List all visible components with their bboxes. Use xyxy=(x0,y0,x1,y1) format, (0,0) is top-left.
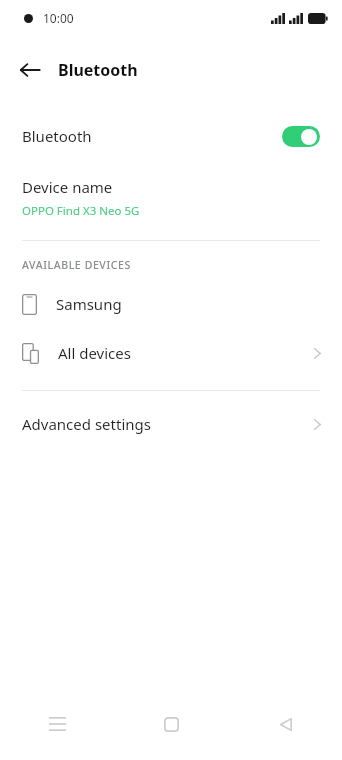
staticText: Advanced settings xyxy=(22,414,151,434)
button[interactable]: Home xyxy=(114,700,228,748)
staticText: All devices xyxy=(58,343,131,363)
staticText: Bluetooth xyxy=(58,59,138,81)
staticText: Device name xyxy=(22,177,113,197)
button[interactable]: Advanced settings xyxy=(0,407,342,441)
button[interactable]: Bluetooth xyxy=(0,114,342,158)
button[interactable]: Recent apps xyxy=(0,700,114,748)
button[interactable]: Samsung xyxy=(0,285,342,323)
button[interactable]: Back xyxy=(10,50,50,90)
button[interactable]: Device name xyxy=(0,177,342,219)
button[interactable]: Back xyxy=(228,700,342,748)
staticText: 10:00 xyxy=(43,10,74,26)
staticText: OPPO Find X3 Neo 5G xyxy=(22,203,140,219)
button[interactable]: Bluetooth toggle xyxy=(282,126,320,147)
staticText: Samsung xyxy=(56,294,122,314)
staticText: Bluetooth xyxy=(22,126,92,146)
staticText: AVAILABLE DEVICES xyxy=(22,258,131,272)
button[interactable]: All devices xyxy=(0,334,342,372)
